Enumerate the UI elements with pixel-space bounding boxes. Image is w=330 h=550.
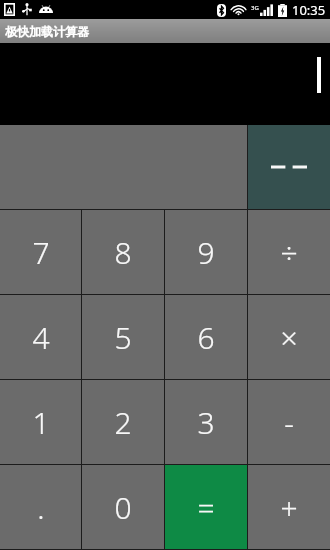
staticText: 6 [197, 317, 215, 358]
staticText: 5 [114, 317, 132, 358]
button[interactable]: 3 [165, 380, 247, 464]
button[interactable]: - [248, 380, 330, 464]
staticText: 0 [114, 487, 132, 528]
staticText: × [280, 317, 298, 358]
button[interactable]: Delete [248, 125, 330, 209]
staticText: ÷ [280, 232, 298, 273]
staticText: - [284, 402, 294, 443]
button[interactable]: = [165, 465, 247, 549]
staticText: 7 [32, 232, 50, 273]
button[interactable]: 9 [165, 210, 247, 294]
staticText: 1 [32, 402, 50, 443]
staticText: . [37, 487, 45, 528]
button[interactable]: ÷ [248, 210, 330, 294]
staticText: + [280, 487, 298, 528]
staticText: 2 [114, 402, 132, 443]
staticText: = [197, 487, 215, 528]
staticText: 极快加载计算器 [5, 24, 89, 39]
button[interactable]: . [0, 465, 81, 549]
button[interactable]: 1 [0, 380, 81, 464]
staticText: 3 [197, 402, 215, 443]
button[interactable]: 7 [0, 210, 81, 294]
staticText: 8 [114, 232, 132, 273]
staticText: 3G [251, 4, 259, 12]
staticText: 9 [197, 232, 215, 273]
button[interactable]: 5 [82, 295, 164, 379]
button[interactable]: 2 [82, 380, 164, 464]
button[interactable]: 6 [165, 295, 247, 379]
staticText: 4 [32, 317, 50, 358]
button[interactable]: 4 [0, 295, 81, 379]
button[interactable]: 0 [82, 465, 164, 549]
button[interactable]: × [248, 295, 330, 379]
button[interactable]: 8 [82, 210, 164, 294]
button[interactable]: + [248, 465, 330, 549]
staticText: 10:35 [292, 1, 326, 19]
